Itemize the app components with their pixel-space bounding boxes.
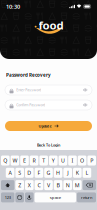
button[interactable]: E bbox=[20, 155, 29, 165]
staticText: J bbox=[67, 169, 68, 176]
button[interactable]: Delete bbox=[83, 180, 96, 190]
button[interactable]: H bbox=[54, 168, 62, 178]
button[interactable]: L bbox=[83, 168, 91, 178]
button[interactable]: M bbox=[73, 180, 82, 190]
staticText: Z bbox=[18, 182, 21, 189]
button[interactable]: I bbox=[68, 155, 77, 165]
staticText: Q bbox=[3, 157, 7, 164]
button[interactable]: Dictate bbox=[25, 192, 34, 202]
button[interactable]: K bbox=[73, 168, 82, 178]
button[interactable]: Q bbox=[1, 155, 10, 165]
button[interactable]: T bbox=[39, 155, 48, 165]
staticText: N bbox=[66, 182, 70, 189]
button[interactable]: S bbox=[15, 168, 24, 178]
staticText: G bbox=[46, 169, 50, 176]
button[interactable]: Shift bbox=[1, 180, 14, 190]
button[interactable]: D bbox=[25, 168, 34, 178]
button[interactable]: B bbox=[54, 180, 62, 190]
staticText: 10:30 bbox=[6, 3, 20, 10]
button[interactable]: space bbox=[35, 192, 76, 202]
staticText: T bbox=[42, 157, 45, 164]
staticText: F bbox=[37, 169, 40, 176]
staticText: A bbox=[9, 169, 12, 176]
staticText: S bbox=[18, 169, 21, 176]
button[interactable]: Back To Login bbox=[5, 141, 92, 149]
button[interactable]: X bbox=[25, 180, 34, 190]
staticText: M bbox=[75, 182, 80, 189]
staticText: X bbox=[28, 182, 31, 189]
staticText: C bbox=[37, 182, 40, 189]
button[interactable]: U bbox=[59, 155, 67, 165]
button[interactable]: V bbox=[44, 180, 53, 190]
staticText: V bbox=[47, 182, 50, 189]
button[interactable]: Confirm Password bbox=[5, 100, 92, 110]
staticText: H bbox=[56, 169, 60, 176]
button[interactable]: R bbox=[30, 155, 38, 165]
staticText: Confirm Password bbox=[16, 103, 45, 107]
staticText: space bbox=[50, 195, 61, 200]
button[interactable]: P bbox=[87, 155, 96, 165]
staticText: 123 bbox=[5, 195, 11, 200]
staticText: K bbox=[76, 169, 79, 176]
staticText: Back To Login bbox=[37, 142, 60, 147]
button[interactable]: C bbox=[35, 180, 43, 190]
staticText: O bbox=[80, 157, 84, 164]
staticText: return bbox=[81, 195, 92, 200]
button[interactable]: W bbox=[11, 155, 19, 165]
staticText: W bbox=[12, 157, 17, 164]
staticText: U bbox=[61, 157, 65, 164]
button[interactable]: G bbox=[44, 168, 53, 178]
button[interactable]: A bbox=[6, 168, 14, 178]
staticText: B bbox=[57, 182, 60, 189]
staticText: D bbox=[27, 169, 31, 176]
staticText: P bbox=[90, 157, 93, 164]
staticText: R bbox=[33, 157, 36, 164]
button[interactable]: Z bbox=[15, 180, 24, 190]
staticText: Update bbox=[38, 123, 51, 128]
staticText: Y bbox=[52, 157, 55, 164]
staticText: Password Recovery bbox=[6, 72, 51, 78]
button[interactable]: Enter Password bbox=[5, 85, 92, 95]
staticText: E bbox=[23, 157, 26, 164]
button[interactable]: Update bbox=[5, 121, 92, 131]
button[interactable]: J bbox=[63, 168, 72, 178]
button[interactable]: Y bbox=[49, 155, 58, 165]
staticText: food bbox=[38, 17, 63, 32]
button[interactable]: O bbox=[78, 155, 86, 165]
staticText: L bbox=[85, 169, 88, 176]
button[interactable]: N bbox=[63, 180, 72, 190]
button[interactable]: Emoji bbox=[15, 192, 24, 202]
button[interactable]: return bbox=[77, 192, 96, 202]
button[interactable]: 123 bbox=[1, 192, 14, 202]
button[interactable]: F bbox=[35, 168, 43, 178]
staticText: Enter Password bbox=[16, 88, 41, 92]
staticText: I bbox=[71, 157, 73, 164]
